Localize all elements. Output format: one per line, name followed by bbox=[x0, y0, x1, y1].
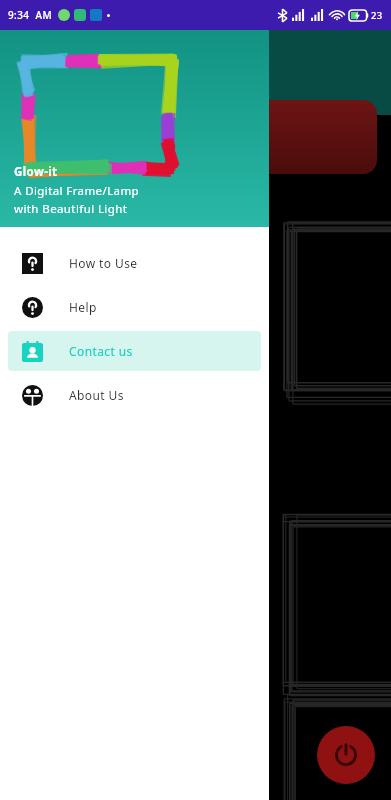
staticText: Glow-it bbox=[14, 164, 58, 180]
button[interactable]: Help bbox=[8, 287, 261, 327]
button[interactable]: About Us bbox=[8, 375, 261, 415]
staticText: About Us bbox=[69, 387, 124, 403]
staticText: Contact us bbox=[69, 343, 133, 359]
button[interactable] bbox=[20, 100, 377, 174]
staticText: A Digital Frame/Lamp bbox=[14, 183, 140, 199]
staticText: 9:34 AM bbox=[8, 8, 53, 22]
button[interactable]: Contact us bbox=[8, 331, 261, 371]
button[interactable]: How to Use bbox=[8, 243, 261, 283]
staticText: 23 bbox=[371, 9, 383, 22]
staticText: Help bbox=[69, 299, 97, 315]
staticText: with Beautiful Light bbox=[14, 201, 128, 217]
staticText: How to Use bbox=[69, 255, 138, 271]
button[interactable]: Power bbox=[317, 726, 375, 784]
